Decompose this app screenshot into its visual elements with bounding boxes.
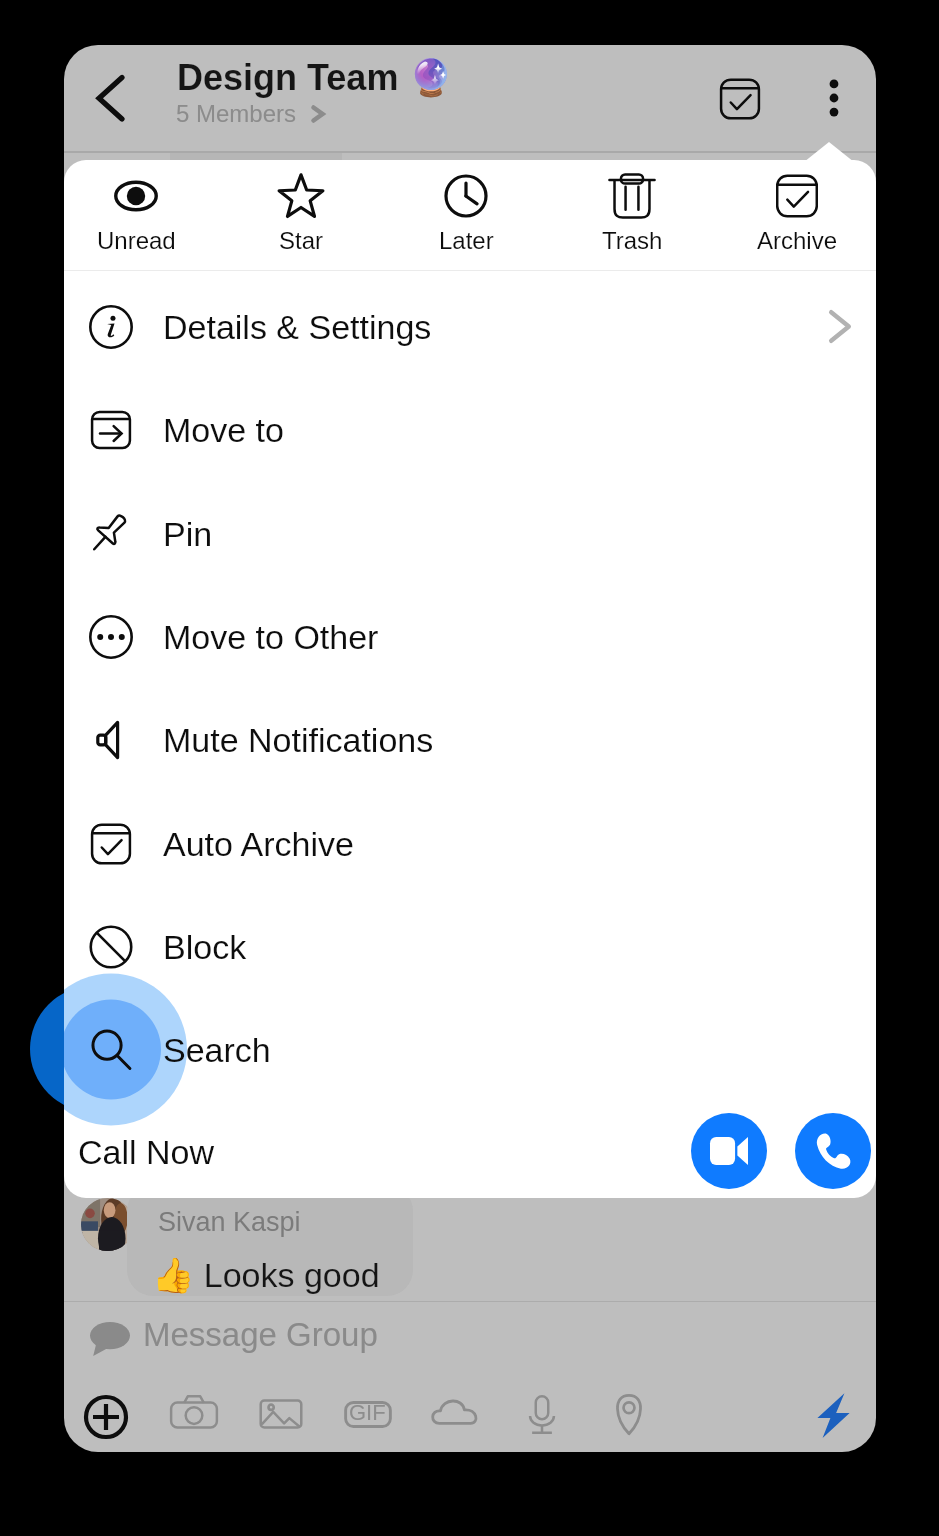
button[interactable]: Gallery <box>255 1388 307 1440</box>
button[interactable]: Cloud <box>429 1388 481 1440</box>
button[interactable]: More options <box>808 64 860 132</box>
staticText: Unread <box>97 227 176 254</box>
button[interactable]: Audio call <box>795 1113 871 1189</box>
button[interactable]: Block <box>64 895 876 998</box>
staticText: 5 Members <box>176 100 297 127</box>
button[interactable]: Add <box>84 1395 128 1439</box>
staticText: Block <box>163 928 247 966</box>
staticText: Search <box>163 1031 271 1069</box>
button[interactable]: Archive <box>710 69 770 129</box>
staticText: Archive <box>757 227 838 254</box>
button[interactable]: Back <box>76 68 144 128</box>
button[interactable]: Details & Settings <box>64 275 876 378</box>
button[interactable]: Move to <box>64 378 876 481</box>
staticText: 👍 Looks good <box>152 1255 380 1295</box>
staticText: Pin <box>163 515 213 553</box>
button[interactable]: Call Now <box>64 1105 876 1198</box>
staticText: Call Now <box>78 1133 215 1171</box>
button[interactable]: Move to Other <box>64 585 876 688</box>
staticText: Star <box>279 227 324 254</box>
button[interactable]: Video call <box>691 1113 767 1189</box>
button[interactable]: Star <box>231 173 371 254</box>
button[interactable]: Mute Notifications <box>64 688 876 791</box>
staticText: Trash <box>602 227 663 254</box>
button[interactable]: Camera <box>168 1388 220 1440</box>
button[interactable]: Trash <box>562 173 702 254</box>
staticText: Auto Archive <box>163 825 354 863</box>
staticText: Details & Settings <box>163 308 432 346</box>
button[interactable]: Pin <box>64 482 876 585</box>
staticText: Later <box>439 227 494 254</box>
button[interactable]: Search <box>64 998 876 1101</box>
staticText: GIF <box>349 1400 386 1425</box>
button[interactable]: GIF <box>342 1388 394 1440</box>
staticText: Message Group <box>143 1316 378 1353</box>
button[interactable]: Voice message <box>516 1388 568 1440</box>
staticText: Move to Other <box>163 618 379 656</box>
button[interactable]: Quick send <box>807 1389 859 1441</box>
staticText: Mute Notifications <box>163 721 434 759</box>
staticText: Design Team 🔮 <box>177 57 454 99</box>
staticText: Move to <box>163 411 284 449</box>
button[interactable]: Unread <box>66 173 206 254</box>
button[interactable]: Archive <box>727 173 867 254</box>
button[interactable]: Auto Archive <box>64 792 876 895</box>
button[interactable]: Location <box>603 1388 655 1440</box>
staticText: Sivan Kaspi <box>158 1207 301 1237</box>
button[interactable]: Later <box>396 173 536 254</box>
